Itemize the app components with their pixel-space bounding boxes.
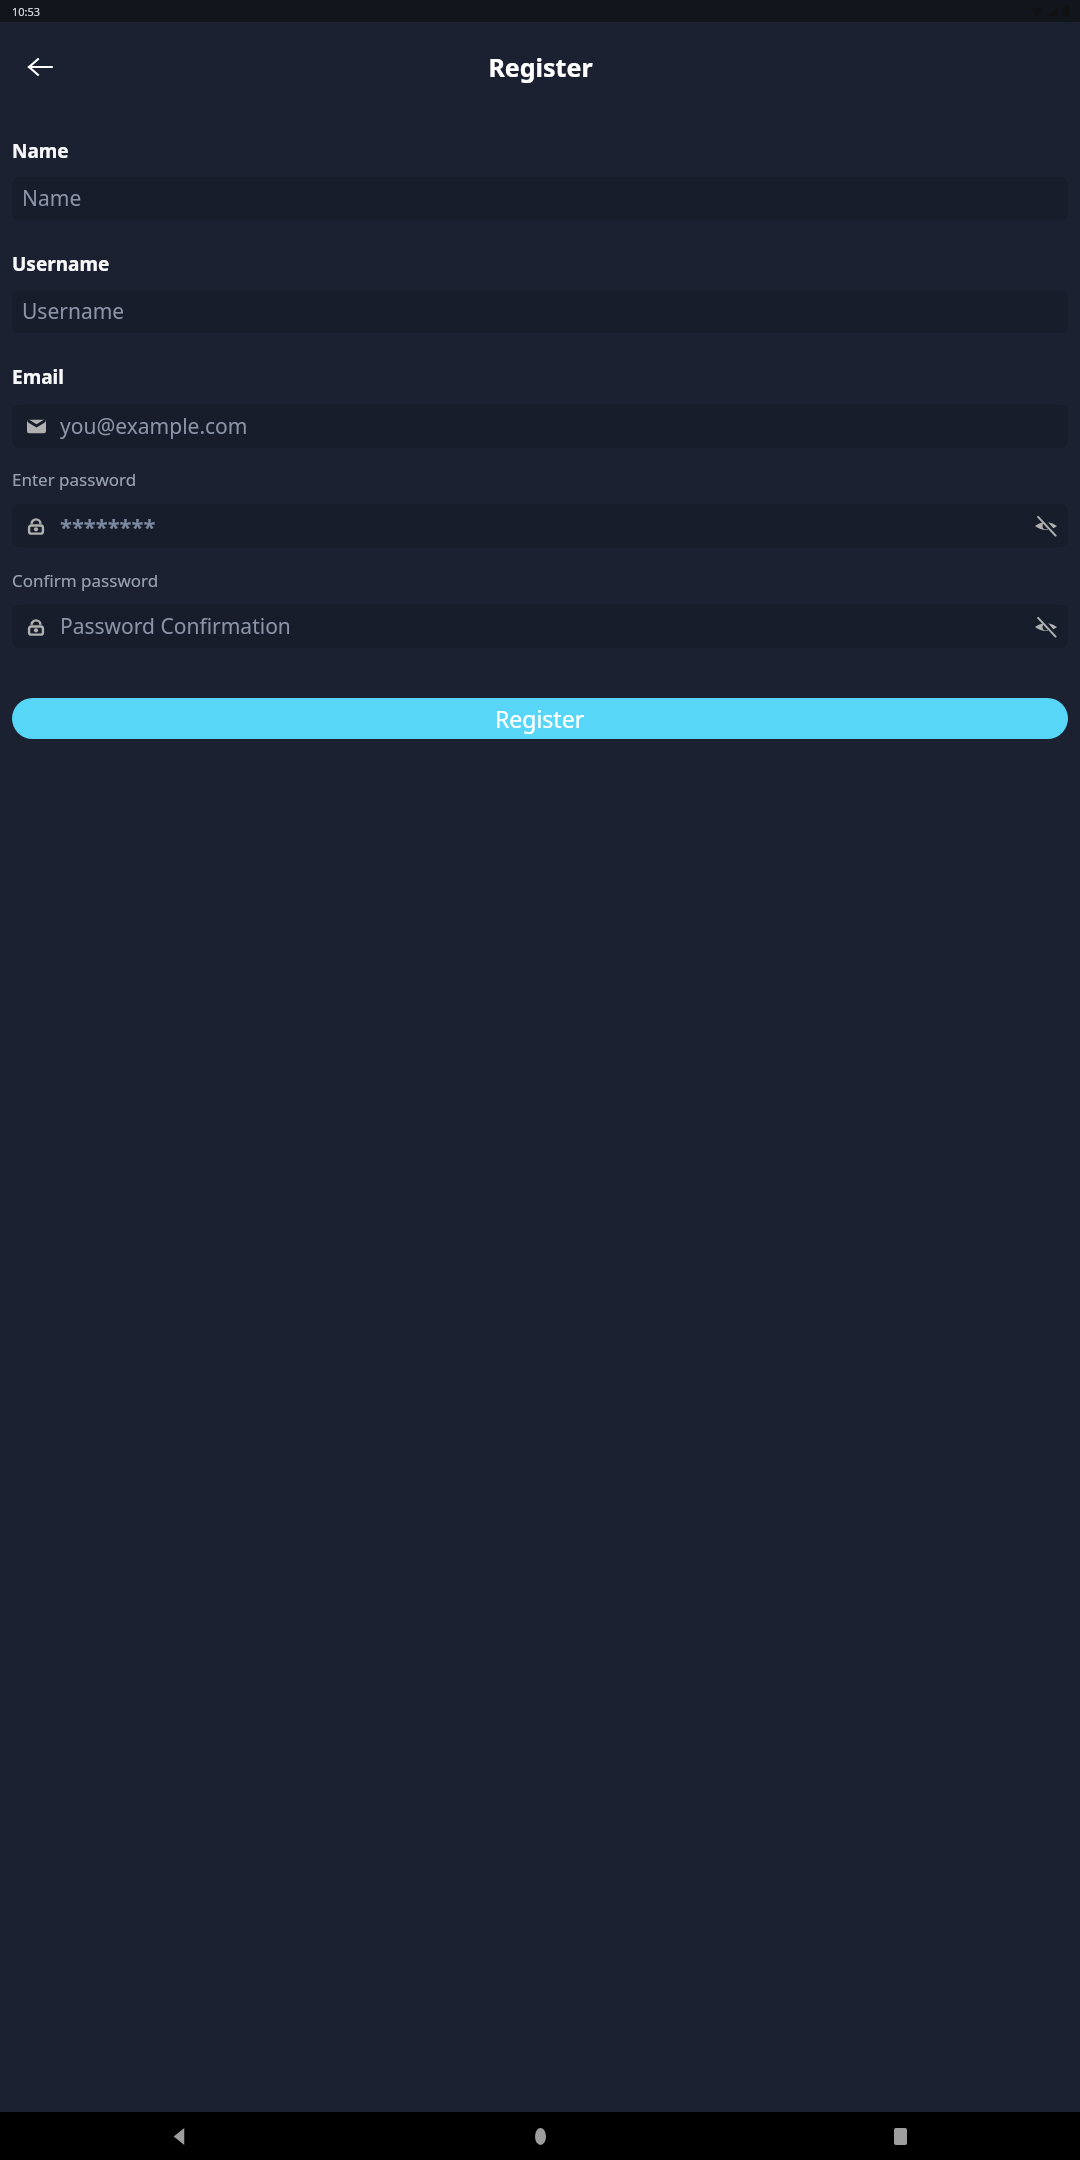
button[interactable]: Recent apps — [720, 2112, 1080, 2160]
staticText: Email — [12, 364, 64, 390]
staticText: 10:53 — [12, 4, 41, 19]
staticText: Register — [495, 703, 585, 734]
staticText: Register — [488, 50, 593, 84]
button[interactable]: Register — [12, 698, 1068, 739]
button[interactable]: Back — [14, 41, 66, 93]
staticText: Name — [22, 184, 82, 213]
button[interactable]: Username — [12, 290, 1068, 333]
button[interactable]: you@example.com — [12, 405, 1068, 448]
staticText: Enter password — [12, 468, 137, 491]
button[interactable]: Password Confirmation — [12, 605, 1068, 648]
staticText: you@example.com — [60, 412, 1060, 441]
button[interactable]: Name — [12, 177, 1068, 220]
button[interactable]: ******** — [12, 504, 1068, 547]
staticText: Username — [12, 251, 110, 277]
staticText: Confirm password — [12, 569, 159, 592]
staticText: ******** — [60, 511, 1024, 541]
staticText: Username — [22, 297, 125, 326]
button[interactable]: Back — [0, 2112, 360, 2160]
staticText: Password Confirmation — [60, 612, 1024, 641]
button[interactable]: Show password — [1024, 504, 1068, 547]
button[interactable]: Show password — [1024, 605, 1068, 648]
button[interactable]: Home — [360, 2112, 720, 2160]
staticText: Name — [12, 138, 69, 164]
